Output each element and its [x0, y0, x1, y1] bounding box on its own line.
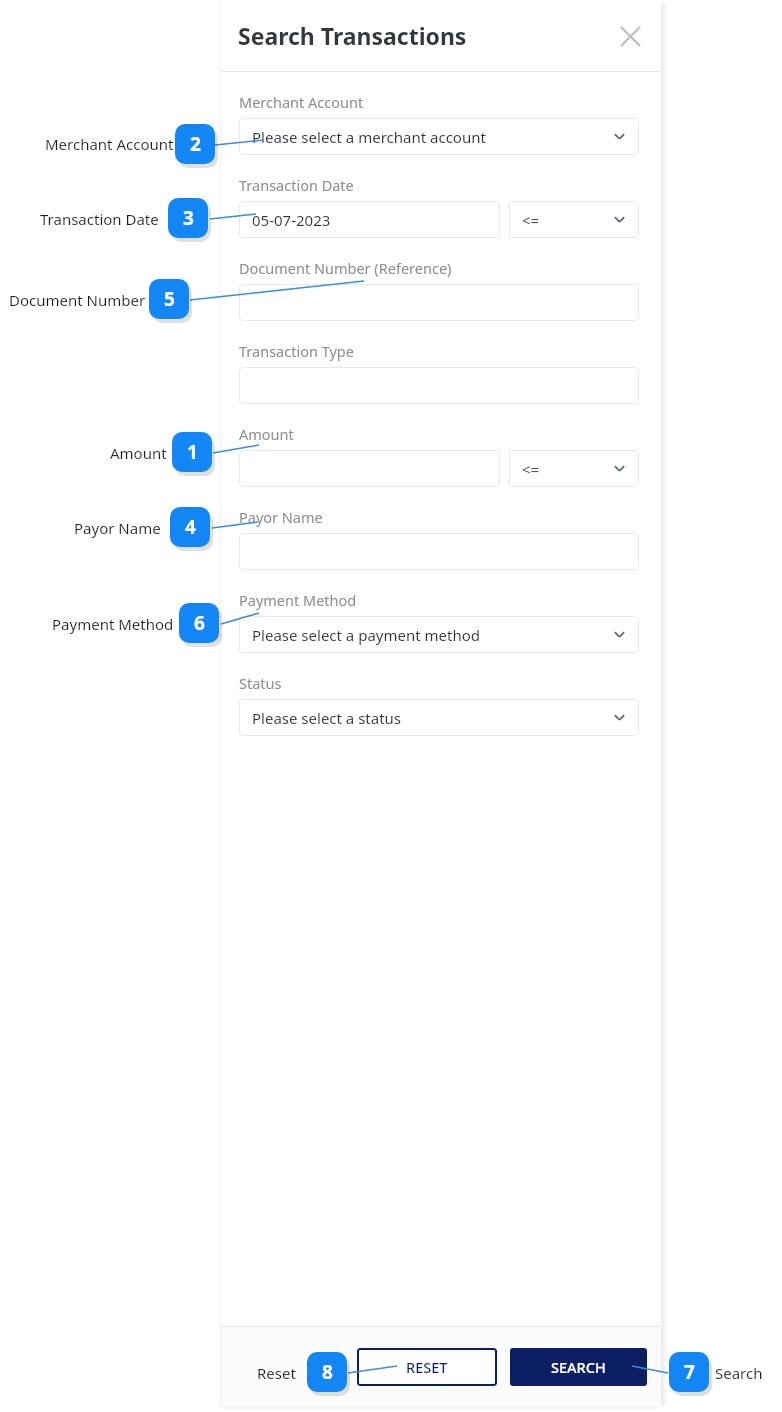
staticText: SEARCH: [551, 1357, 606, 1377]
staticText: 1: [187, 439, 198, 465]
staticText: 5: [164, 286, 175, 312]
staticText: Transaction Date: [239, 175, 354, 195]
button[interactable]: Transaction Date operator: [509, 201, 639, 238]
staticText: Reset: [257, 1363, 296, 1383]
staticText: 05-07-2023: [252, 210, 331, 230]
button[interactable]: Merchant Account: [239, 118, 639, 155]
staticText: Merchant Account: [239, 92, 364, 112]
button[interactable]: Close: [613, 19, 647, 53]
button[interactable]: Document Number: [239, 284, 639, 321]
staticText: RESET: [406, 1357, 448, 1377]
staticText: 8: [322, 1359, 333, 1385]
staticText: 3: [183, 205, 194, 231]
staticText: Search: [715, 1363, 763, 1383]
button[interactable]: Transaction Type: [239, 367, 639, 404]
staticText: Merchant Account: [45, 134, 174, 154]
staticText: Amount: [239, 424, 294, 444]
staticText: Search Transactions: [238, 20, 467, 51]
staticText: Please select a merchant account: [252, 127, 486, 147]
staticText: Payor Name: [239, 507, 323, 527]
button[interactable]: RESET: [357, 1348, 497, 1386]
button[interactable]: Amount operator: [509, 450, 639, 487]
staticText: Document Number: [9, 290, 146, 310]
staticText: <=: [522, 459, 540, 479]
staticText: Document Number (Reference): [239, 258, 452, 278]
staticText: Please select a payment method: [252, 625, 481, 645]
staticText: Status: [239, 673, 282, 693]
button[interactable]: Payment Method: [239, 616, 639, 653]
staticText: Payment Method: [52, 614, 174, 634]
staticText: Payor Name: [74, 518, 161, 538]
button[interactable]: Transaction Date: [239, 201, 500, 238]
button[interactable]: Amount: [239, 450, 500, 487]
staticText: Please select a status: [252, 708, 402, 728]
staticText: Payment Method: [239, 590, 357, 610]
staticText: 2: [190, 131, 201, 157]
button[interactable]: Status: [239, 699, 639, 736]
staticText: Transaction Type: [239, 341, 354, 361]
staticText: Amount: [110, 443, 167, 463]
staticText: Transaction Date: [40, 209, 159, 229]
button[interactable]: SEARCH: [510, 1348, 647, 1386]
staticText: 7: [684, 1359, 695, 1385]
staticText: <=: [522, 210, 540, 230]
staticText: 6: [194, 610, 205, 636]
staticText: 4: [185, 514, 196, 540]
button[interactable]: Payor Name: [239, 533, 639, 570]
